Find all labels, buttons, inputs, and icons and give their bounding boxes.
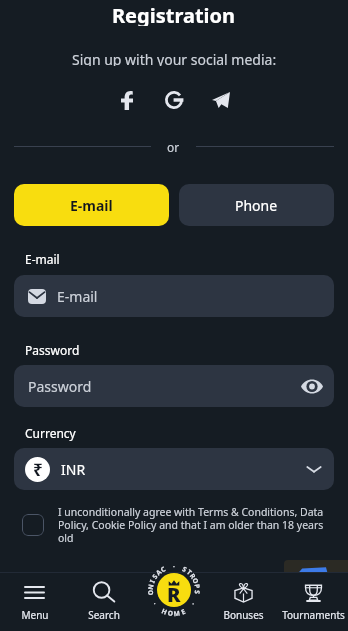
button[interactable]: Menu bbox=[0, 582, 69, 622]
button[interactable]: Sign up with Telegram bbox=[206, 85, 236, 115]
staticText: Bonuses bbox=[223, 608, 264, 622]
staticText: E-mail bbox=[25, 251, 60, 267]
button[interactable]: Home bbox=[142, 560, 206, 619]
staticText: Tournaments bbox=[282, 608, 345, 622]
staticText: or bbox=[167, 139, 180, 155]
staticText: Sign up with your social media: bbox=[72, 50, 277, 66]
button[interactable]: ₹ bbox=[14, 448, 334, 490]
button[interactable]: Search bbox=[69, 582, 138, 622]
staticText: Password bbox=[28, 377, 300, 396]
staticText: E-mail bbox=[70, 196, 113, 215]
button[interactable]: I unconditionally agree with Terms & Con… bbox=[22, 505, 326, 545]
button[interactable]: Bonuses bbox=[208, 582, 278, 622]
button[interactable]: Password bbox=[14, 365, 334, 407]
button[interactable]: Promo bbox=[284, 560, 348, 574]
button[interactable]: Sign up with Google bbox=[159, 85, 189, 115]
staticText: Password bbox=[25, 342, 80, 358]
button[interactable]: Tournaments bbox=[278, 582, 348, 622]
button[interactable]: E-mail bbox=[14, 184, 169, 226]
button[interactable]: Phone bbox=[179, 184, 334, 226]
staticText: ₹ bbox=[33, 458, 43, 481]
staticText: E-mail bbox=[57, 287, 98, 306]
button[interactable]: Sign up with Facebook bbox=[112, 85, 142, 115]
staticText: Search bbox=[88, 608, 120, 622]
staticText: Registration bbox=[112, 2, 236, 26]
button[interactable]: Show password bbox=[300, 374, 324, 398]
staticText: I unconditionally agree with Terms & Con… bbox=[58, 505, 326, 545]
staticText: Menu bbox=[21, 608, 49, 622]
staticText: INR bbox=[61, 460, 306, 479]
staticText: Phone bbox=[235, 196, 278, 215]
staticText: Currency bbox=[25, 425, 76, 441]
staticText: R bbox=[167, 581, 181, 607]
button[interactable]: E-mail bbox=[14, 275, 334, 317]
